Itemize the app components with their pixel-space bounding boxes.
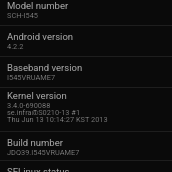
button[interactable]: Build number <box>0 132 172 161</box>
staticText: Build number <box>7 137 63 148</box>
button[interactable]: Android version <box>0 26 172 57</box>
staticText: Thu Jun 13 10:14:27 KST 2013 <box>7 115 108 122</box>
staticText: SCH-I545 <box>7 11 38 18</box>
staticText: 3.4.0-690088 <box>7 101 51 108</box>
button[interactable]: Model number <box>0 0 172 26</box>
staticText: 4.2.2 <box>7 42 24 49</box>
staticText: Android version <box>7 31 74 42</box>
staticText: SELinux status <box>7 166 70 172</box>
staticText: se.infra@S0210-13 #1 <box>7 108 81 115</box>
staticText: Model number <box>7 0 69 11</box>
staticText: I545VRUAME7 <box>7 73 56 80</box>
staticText: Kernel version <box>7 90 67 101</box>
staticText: Baseband version <box>7 62 83 73</box>
staticText: JDQ39.I545VRUAME7 <box>7 148 80 155</box>
button[interactable]: Kernel version <box>0 88 172 132</box>
button[interactable]: Baseband version <box>0 57 172 88</box>
button[interactable]: SELinux status <box>0 161 172 172</box>
